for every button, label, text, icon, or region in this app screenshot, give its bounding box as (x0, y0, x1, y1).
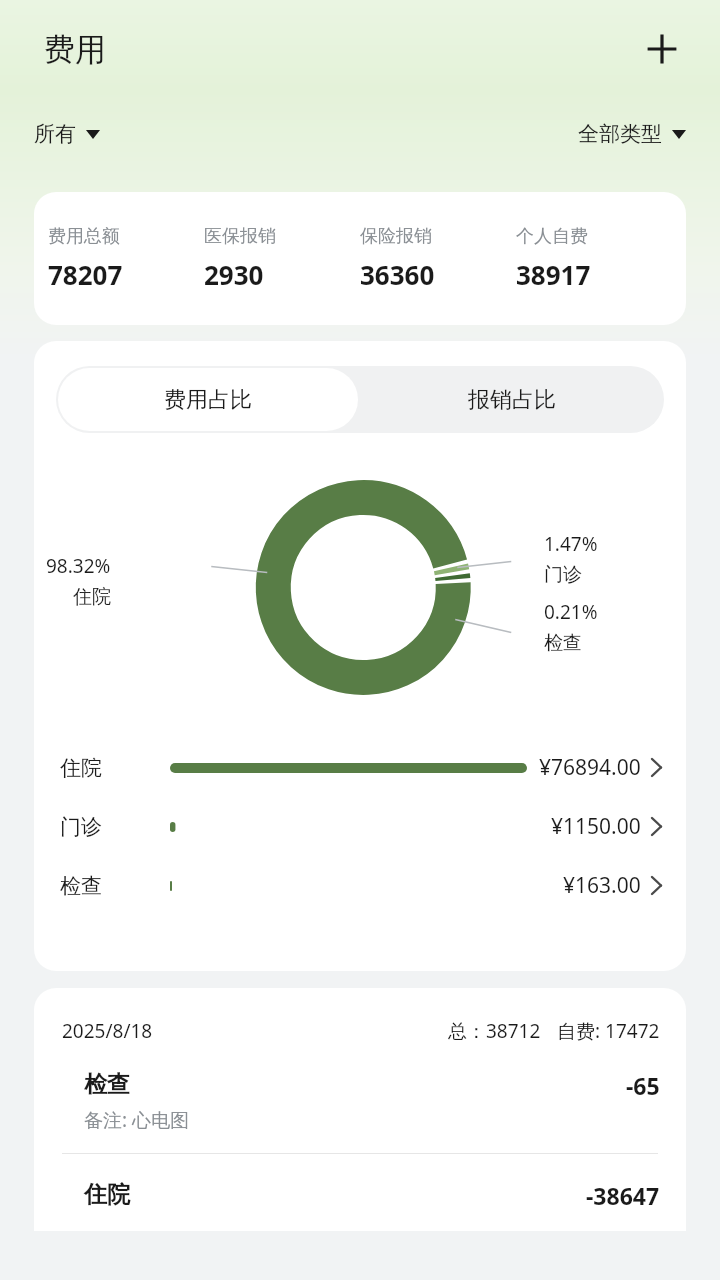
button[interactable]: 报销占比 (360, 366, 664, 433)
staticText: 备注: 心电图 (84, 1107, 190, 1133)
staticText: 全部类型 (578, 121, 662, 147)
staticText: -38647 (586, 1180, 660, 1211)
staticText: 住院 (84, 1180, 130, 1209)
button[interactable]: 费用总额 (34, 192, 686, 325)
staticText: 总：38712 (448, 1018, 541, 1044)
staticText: 住院 (73, 585, 111, 609)
staticText: 自费: 17472 (557, 1018, 660, 1044)
button[interactable]: 检查 (34, 1044, 686, 1153)
staticText: 门诊 (60, 814, 170, 840)
button[interactable]: Add expense (636, 23, 688, 75)
staticText: 检查 (60, 873, 170, 899)
button[interactable]: 全部类型 (574, 115, 690, 153)
staticText: 费用占比 (164, 386, 252, 414)
staticText: 住院 (60, 755, 170, 781)
staticText: 费用总额 (48, 225, 120, 248)
button[interactable]: 所有 (30, 115, 104, 153)
button[interactable]: 检查 (34, 856, 686, 915)
button[interactable]: 费用占比 (58, 368, 358, 431)
button[interactable]: 门诊 (34, 797, 686, 856)
button[interactable]: 住院 (34, 738, 686, 797)
staticText: 1.47% (544, 531, 598, 557)
staticText: 所有 (34, 121, 76, 147)
staticText: ¥76894.00 (539, 753, 641, 782)
staticText: 费用 (44, 30, 106, 69)
staticText: 2930 (204, 257, 264, 292)
staticText: ¥1150.00 (551, 812, 641, 841)
staticText: 98.32% (46, 553, 111, 579)
staticText: 报销占比 (468, 386, 556, 414)
staticText: 门诊 (544, 563, 582, 587)
staticText: ¥163.00 (563, 871, 641, 900)
staticText: 38917 (516, 257, 591, 292)
button[interactable]: 住院 (34, 1154, 686, 1231)
staticText: 78207 (48, 257, 123, 292)
staticText: 36360 (360, 257, 435, 292)
staticText: 0.21% (544, 599, 598, 625)
staticText: 检查 (84, 1070, 130, 1099)
staticText: 保险报销 (360, 225, 432, 248)
staticText: 医保报销 (204, 225, 276, 248)
staticText: 2025/8/18 (62, 1018, 153, 1044)
staticText: 检查 (544, 631, 582, 655)
staticText: 个人自费 (516, 225, 588, 248)
staticText: -65 (626, 1070, 660, 1101)
